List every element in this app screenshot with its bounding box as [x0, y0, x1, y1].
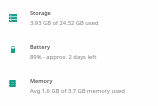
button[interactable]: Memory [0, 68, 158, 102]
staticText: Battery [30, 43, 50, 50]
staticText: 89% - approx. 2 days left [30, 53, 97, 61]
other: Memory [9, 80, 16, 87]
staticText: Storage [30, 9, 51, 16]
staticText: 3.93 GB of 24.52 GB used [30, 19, 99, 27]
staticText: Memory [30, 77, 53, 84]
staticText: Avg 1.6 GB of 3.7 GB memory used [30, 87, 125, 95]
button[interactable]: Battery [0, 34, 158, 68]
button[interactable]: Storage [0, 0, 158, 34]
other: Storage [9, 14, 17, 22]
other: Battery [11, 46, 15, 53]
